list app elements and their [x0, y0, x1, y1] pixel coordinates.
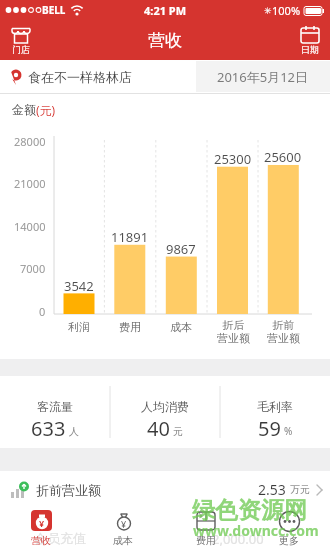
button[interactable]: 人均消费	[110, 376, 220, 442]
staticText: 7000	[20, 261, 46, 276]
staticText: 25600	[264, 148, 302, 166]
staticText: 会员充值	[34, 530, 86, 546]
staticText: 28000	[14, 134, 46, 149]
button[interactable]: ¥	[164, 508, 247, 550]
staticText: 客流量	[37, 399, 73, 414]
staticText: ¥	[121, 518, 127, 530]
staticText: 食在不一样格林店	[28, 69, 132, 85]
staticText: 4:21 PM	[144, 3, 187, 18]
staticText: 人	[69, 425, 79, 438]
staticText: 费用	[196, 534, 216, 547]
button[interactable]: 日期	[300, 25, 320, 55]
staticText: 59	[258, 415, 281, 442]
staticText: 利润	[68, 320, 90, 334]
staticText: ✳	[264, 6, 272, 16]
staticText: www.downcc.com	[193, 521, 319, 540]
button[interactable]: 毛利率	[220, 376, 330, 442]
staticText: 营收	[31, 534, 51, 547]
staticText: ¥	[39, 517, 45, 529]
staticText: 毛利率	[257, 399, 293, 414]
staticText: 营收	[148, 30, 182, 51]
staticText: 0	[39, 304, 46, 319]
button[interactable]: 2016年5月12日	[196, 61, 330, 92]
staticText: 25300	[214, 150, 252, 168]
staticText: 21000	[14, 176, 46, 191]
staticText: ¥	[199, 511, 204, 521]
staticText: 元	[173, 425, 183, 438]
staticText: 2,000.00	[212, 530, 264, 548]
staticText: BELL	[42, 3, 66, 17]
staticText: 3542	[64, 277, 94, 295]
staticText: 14000	[14, 219, 46, 234]
staticText: 万元	[290, 483, 310, 496]
staticText: 11891	[111, 228, 149, 246]
staticText: 成本	[170, 320, 192, 334]
staticText: 更多	[279, 534, 299, 547]
staticText: 日期	[301, 44, 319, 55]
staticText: 折后 营业额	[217, 318, 250, 346]
staticText: 2016年5月12日	[217, 68, 309, 86]
staticText: 40	[147, 415, 170, 442]
staticText: %	[284, 424, 293, 438]
button[interactable]: ¥	[82, 508, 164, 550]
staticText: 2.53	[258, 480, 286, 499]
staticText: 成本	[113, 534, 133, 547]
staticText: (元)	[36, 102, 56, 118]
staticText: 费用	[119, 320, 141, 334]
staticText: 人均消费	[141, 399, 189, 414]
staticText: 金额	[12, 102, 36, 117]
staticText: 绿色资源网	[192, 496, 307, 525]
button[interactable]: 折前营业额	[0, 471, 330, 508]
staticText: 折前营业额	[36, 482, 101, 498]
staticText: 633	[31, 415, 66, 442]
button[interactable]: 客流量	[0, 376, 110, 442]
button[interactable]: ¥	[0, 508, 82, 550]
button[interactable]: 更多	[247, 508, 330, 550]
staticText: 9867	[166, 240, 196, 258]
staticText: 折前 营业额	[267, 318, 300, 346]
button[interactable]: 门店	[10, 25, 32, 55]
staticText: 门店	[12, 44, 30, 55]
staticText: 100%	[272, 3, 301, 18]
